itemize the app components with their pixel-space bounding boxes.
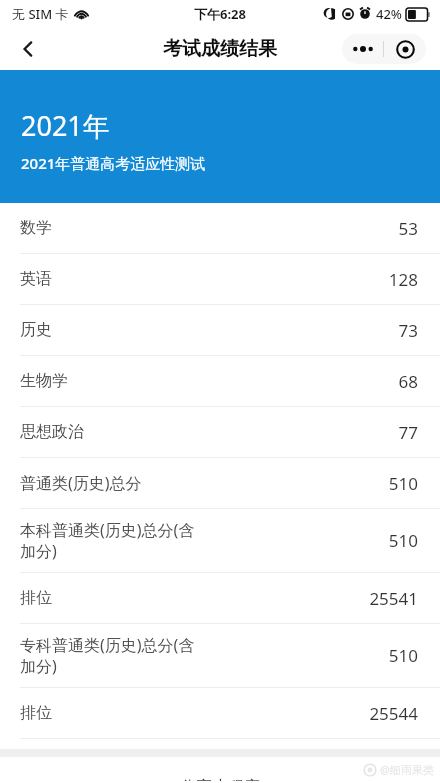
button[interactable]: 思想政治: [0, 407, 440, 458]
staticText: 无 SIM 卡: [12, 5, 69, 23]
button[interactable]: 本科普通类(历史)总分(含 加分): [0, 509, 440, 573]
button[interactable]: Back: [8, 29, 48, 69]
button[interactable]: 数学: [0, 203, 440, 254]
staticText: 专科普通类(历史)总分(含 加分): [20, 634, 378, 677]
button[interactable]: 生物学: [0, 356, 440, 407]
staticText: 普通类(历史)总分: [20, 472, 378, 494]
staticText: 510: [388, 529, 418, 552]
staticText: 英语: [20, 269, 378, 289]
staticText: 42%: [376, 5, 402, 23]
staticText: 25541: [369, 587, 418, 610]
button[interactable]: 排位: [0, 688, 440, 739]
staticText: 25544: [369, 702, 418, 725]
button[interactable]: 英语: [0, 254, 440, 305]
staticText: 53: [398, 217, 418, 240]
staticText: 生物学: [20, 371, 388, 391]
staticText: 数学: [20, 218, 388, 238]
staticText: 128: [388, 268, 418, 291]
staticText: 下午6:28: [194, 5, 246, 23]
staticText: 历史: [20, 320, 388, 340]
staticText: 排位: [20, 588, 359, 608]
button[interactable]: Close mini program: [384, 34, 426, 64]
button[interactable]: 分享小程序: [170, 775, 270, 783]
button[interactable]: 专科普通类(历史)总分(含 加分): [0, 624, 440, 688]
button[interactable]: 历史: [0, 305, 440, 356]
staticText: 2021年普通高考适应性测试: [21, 153, 206, 173]
staticText: 510: [388, 472, 418, 495]
staticText: 73: [398, 319, 418, 342]
staticText: @细雨果类: [380, 762, 434, 777]
staticText: 思想政治: [20, 422, 388, 442]
staticText: 本科普通类(历史)总分(含 加分): [20, 519, 378, 562]
button[interactable]: 排位: [0, 573, 440, 624]
staticText: 分享小程序: [180, 777, 260, 781]
button[interactable]: 普通类(历史)总分: [0, 458, 440, 509]
button[interactable]: More options: [342, 34, 383, 64]
staticText: 68: [398, 370, 418, 393]
staticText: 510: [388, 644, 418, 667]
staticText: 考试成绩结果: [163, 37, 277, 61]
staticText: 2021年: [21, 107, 110, 144]
staticText: 77: [398, 421, 418, 444]
staticText: 排位: [20, 703, 359, 723]
